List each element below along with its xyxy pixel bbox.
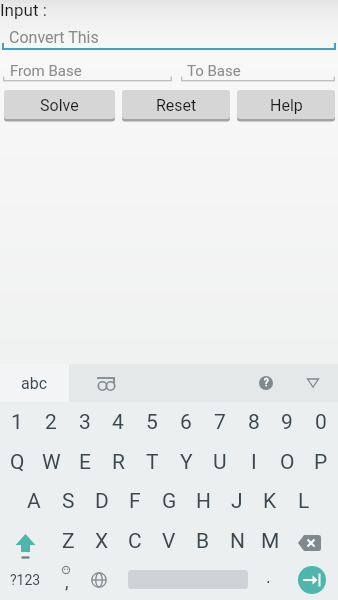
staticText: T (146, 450, 159, 475)
button[interactable]: 7 (203, 402, 237, 442)
button[interactable]: N (220, 521, 254, 561)
button[interactable]: S (51, 481, 85, 521)
staticText: L (298, 489, 310, 514)
staticText: 7 (214, 410, 226, 435)
button[interactable]: 8 (237, 402, 271, 442)
button[interactable]: Q (0, 442, 34, 482)
button[interactable]: 1 (0, 402, 34, 442)
staticText: P (314, 450, 328, 475)
button[interactable]: P (304, 442, 338, 482)
button[interactable]: J (220, 481, 254, 521)
staticText: Z (62, 529, 75, 554)
button[interactable] (298, 364, 328, 402)
staticText: , (65, 571, 69, 592)
staticText: J (231, 489, 243, 514)
staticText: U (213, 450, 227, 475)
staticText: X (95, 529, 109, 554)
button[interactable]: R (101, 442, 135, 482)
button[interactable]: E (68, 442, 102, 482)
staticText: 9 (281, 410, 293, 435)
staticText: From Base (10, 62, 82, 80)
staticText: B (196, 529, 210, 554)
button[interactable]: ? (252, 364, 280, 402)
button[interactable]: I (237, 442, 271, 482)
button[interactable]: abc (0, 364, 69, 402)
button[interactable] (88, 364, 126, 402)
button[interactable]: Help (237, 90, 335, 120)
button[interactable]: H (186, 481, 220, 521)
staticText: 6 (180, 410, 192, 435)
staticText: 3 (79, 410, 91, 435)
button[interactable]: C (118, 521, 152, 561)
staticText: O (280, 450, 295, 475)
button[interactable]: 6 (169, 402, 203, 442)
button[interactable]: M (253, 521, 287, 561)
staticText: ? (264, 377, 269, 389)
staticText: 0 (315, 410, 327, 435)
staticText: 8 (248, 410, 260, 435)
staticText: R (112, 450, 125, 475)
staticText: Solve (40, 96, 79, 115)
staticText: 4 (112, 410, 124, 435)
button[interactable]: W (34, 442, 68, 482)
button[interactable]: , (52, 560, 82, 600)
staticText: F (129, 489, 141, 514)
button[interactable]: . (256, 560, 280, 600)
staticText: K (263, 489, 277, 514)
staticText: D (95, 489, 109, 514)
staticText: . (266, 566, 271, 587)
staticText: ?123 (10, 572, 41, 588)
button[interactable]: Z (51, 521, 85, 561)
button[interactable]: L (287, 481, 321, 521)
button[interactable]: To Base (180, 58, 338, 84)
button[interactable]: 0 (304, 402, 338, 442)
button[interactable]: D (85, 481, 119, 521)
staticText: N (230, 529, 245, 554)
staticText: Y (180, 450, 193, 475)
staticText: 2 (45, 410, 57, 435)
button[interactable]: ?123 (0, 560, 50, 600)
button[interactable]: U (203, 442, 237, 482)
staticText: Input : (0, 0, 47, 20)
button[interactable]: 5 (135, 402, 169, 442)
staticText: Reset (156, 96, 197, 115)
staticText: W (42, 450, 61, 475)
button[interactable]: V (152, 521, 186, 561)
button[interactable]: G (152, 481, 186, 521)
staticText: G (162, 489, 177, 514)
button[interactable]: T (135, 442, 169, 482)
button[interactable] (298, 566, 326, 594)
button[interactable]: O (270, 442, 304, 482)
button[interactable] (83, 560, 115, 600)
button[interactable]: A (17, 481, 51, 521)
button[interactable]: Reset (122, 90, 230, 120)
button[interactable] (0, 521, 50, 560)
button[interactable]: K (253, 481, 287, 521)
staticText: Q (10, 450, 25, 475)
staticText: Convert This (9, 28, 99, 47)
staticText: C (128, 529, 142, 554)
button[interactable]: X (85, 521, 119, 561)
staticText: M (261, 529, 280, 554)
button[interactable]: B (186, 521, 220, 561)
button[interactable]: From Base (0, 58, 172, 84)
staticText: Help (270, 96, 303, 115)
staticText: S (62, 489, 75, 514)
button[interactable]: 4 (101, 402, 135, 442)
button[interactable]: Solve (4, 90, 115, 120)
button[interactable]: 3 (68, 402, 102, 442)
button[interactable]: F (118, 481, 152, 521)
button[interactable] (288, 521, 338, 560)
staticText: A (27, 489, 41, 514)
staticText: abc (21, 374, 48, 393)
staticText: 5 (146, 410, 158, 435)
staticText: V (162, 529, 176, 554)
button[interactable]: Y (169, 442, 203, 482)
staticText: To Base (187, 62, 241, 80)
button[interactable]: Convert This (0, 22, 338, 52)
staticText: I (251, 450, 257, 475)
button[interactable]: 9 (270, 402, 304, 442)
button[interactable]: 2 (34, 402, 68, 442)
staticText: E (79, 450, 91, 475)
